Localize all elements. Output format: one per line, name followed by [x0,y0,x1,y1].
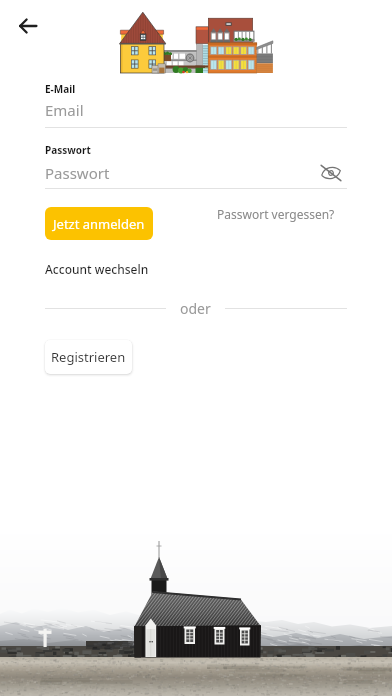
staticText: Jetzt anmelden [53,215,145,233]
staticText: Registrieren [51,348,126,366]
button[interactable]: Account wechseln [45,259,149,279]
button[interactable]: Passwort vergessen? [212,203,340,225]
staticText: Passwort [45,143,91,157]
staticText: E-Mail [45,82,76,96]
button[interactable]: Jetzt anmelden [45,207,153,240]
staticText: Passwort [45,163,110,183]
button[interactable]: Registrieren [45,340,132,374]
staticText: oder [180,299,211,318]
staticText: Email [45,100,84,120]
staticText: Account wechseln [45,261,149,277]
staticText: Passwort vergessen? [217,206,335,222]
button[interactable]: Back [14,12,42,40]
button[interactable]: Show password [319,161,343,185]
